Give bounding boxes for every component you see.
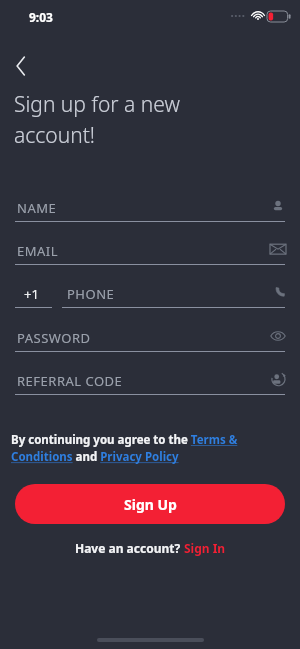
button[interactable]: NAME [0, 190, 300, 232]
button[interactable]: PASSWORD [0, 320, 300, 362]
staticText: Sign In [184, 540, 226, 556]
button[interactable]: Back [6, 52, 36, 80]
staticText: 9:03 [29, 9, 53, 25]
button[interactable]: REFERRAL CODE [0, 363, 300, 405]
staticText: PASSWORD [17, 329, 91, 347]
staticText: REFERRAL CODE [17, 372, 123, 390]
staticText: By continuing you agree to the Terms & C… [11, 432, 281, 465]
button[interactable]: Sign Up [15, 484, 285, 524]
staticText: Sign up for a new account! [14, 90, 180, 149]
staticText: Have an account? [75, 540, 184, 556]
staticText: NAME [17, 199, 57, 217]
button[interactable]: PHONE [67, 285, 115, 303]
button[interactable]: +1 [24, 285, 39, 303]
button[interactable]: EMAIL [0, 233, 300, 275]
button[interactable]: Sign In [184, 540, 226, 556]
staticText: EMAIL [17, 242, 59, 260]
staticText: Sign Up [124, 495, 177, 514]
